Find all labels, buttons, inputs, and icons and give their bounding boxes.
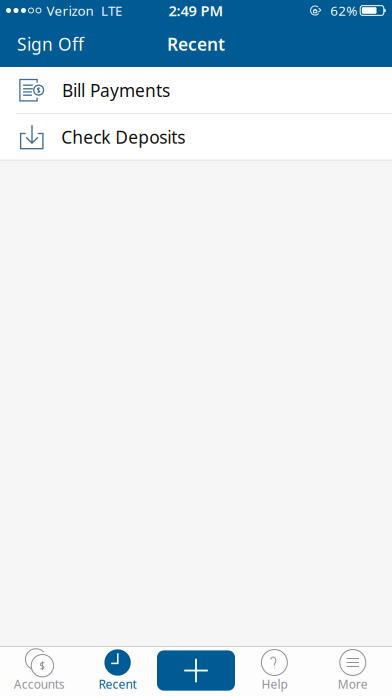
button[interactable]: Recent [78, 647, 157, 696]
staticText: Help [261, 676, 287, 692]
staticText: Recent [99, 676, 137, 692]
staticText: More [338, 676, 368, 692]
staticText: Bill Payments [62, 79, 170, 102]
staticText: Sign Off [17, 32, 84, 55]
staticText: Recent [167, 32, 225, 55]
button[interactable]: More [314, 647, 392, 696]
button[interactable]: Bill Payments [0, 67, 392, 113]
staticText: LTE [101, 2, 122, 19]
button[interactable]: Add [157, 647, 235, 696]
button[interactable]: Accounts [0, 647, 78, 696]
staticText: Verizon [46, 2, 93, 19]
staticText: 2:49 PM [168, 1, 223, 20]
button[interactable]: Sign Off [0, 21, 98, 67]
button[interactable]: Check Deposits [0, 114, 392, 160]
staticText: 62% [330, 2, 357, 19]
staticText: Check Deposits [61, 125, 185, 148]
staticText: Accounts [14, 676, 65, 692]
button[interactable]: Help [235, 647, 314, 696]
